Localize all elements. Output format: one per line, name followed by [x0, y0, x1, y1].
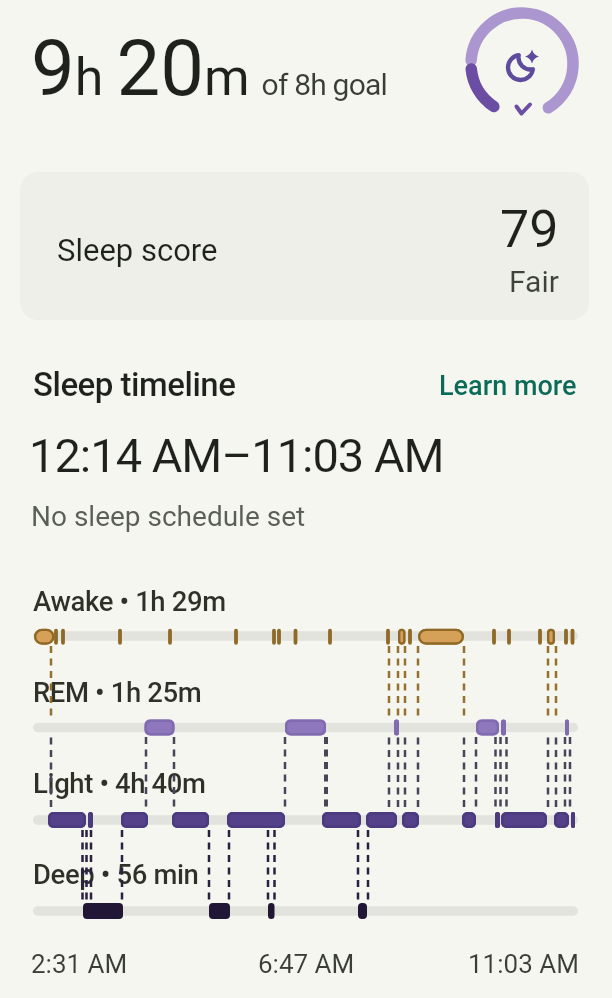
- staticText: No sleep schedule set: [31, 500, 306, 533]
- staticText: Fair: [509, 264, 559, 299]
- staticText: 2:31 AM: [31, 949, 128, 979]
- staticText: 11:03 AM: [468, 949, 579, 979]
- staticText: Light • 4h 40m: [33, 767, 206, 799]
- staticText: 79: [500, 199, 559, 260]
- staticText: Sleep score: [57, 232, 218, 268]
- staticText: Awake • 1h 29m: [33, 585, 226, 617]
- staticText: 9h 20m of 8h goal: [31, 23, 387, 114]
- staticText: Deep • 56 min: [33, 858, 199, 890]
- staticText: 6:47 AM: [258, 949, 355, 979]
- button[interactable]: Learn more: [439, 370, 577, 402]
- button[interactable]: Sleep score: [20, 172, 589, 320]
- staticText: Sleep timeline: [33, 365, 236, 404]
- staticText: REM • 1h 25m: [33, 676, 202, 708]
- staticText: 12:14 AM–11:03 AM: [29, 428, 444, 483]
